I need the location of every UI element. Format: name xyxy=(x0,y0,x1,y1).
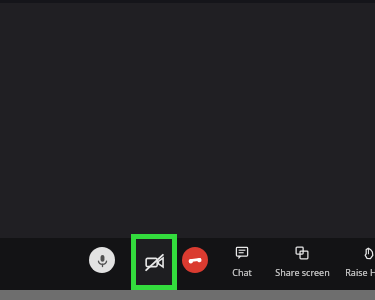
button[interactable]: Share screen xyxy=(267,243,337,287)
button[interactable]: Turn camera off xyxy=(136,239,172,285)
button[interactable]: Raise hand xyxy=(338,243,375,287)
staticText: Share screen xyxy=(275,266,330,278)
staticText: Raise Hand xyxy=(345,266,375,278)
button[interactable]: Microphone xyxy=(89,247,115,273)
button[interactable]: Leave call xyxy=(182,247,208,273)
button[interactable]: Chat xyxy=(224,243,260,287)
staticText: Chat xyxy=(232,266,252,278)
